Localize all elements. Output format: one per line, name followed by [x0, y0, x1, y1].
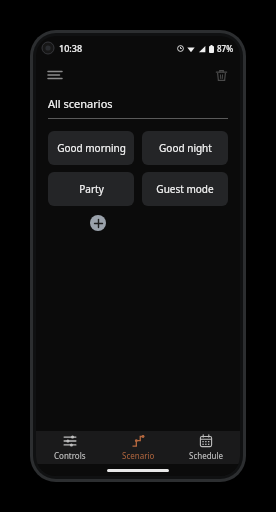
- button[interactable]: Open menu: [42, 62, 68, 88]
- button[interactable]: Good morning: [48, 131, 134, 165]
- button[interactable]: Guest mode: [142, 172, 228, 206]
- staticText: Scenario: [122, 450, 155, 461]
- staticText: Controls: [54, 450, 86, 461]
- staticText: Good morning: [57, 141, 126, 155]
- button[interactable]: Controls: [36, 431, 104, 464]
- staticText: 10:38: [59, 42, 83, 54]
- button[interactable]: Delete: [208, 62, 234, 88]
- staticText: All scenarios: [48, 96, 113, 111]
- button[interactable]: Add scenario: [90, 215, 106, 231]
- staticText: Guest mode: [156, 182, 214, 196]
- staticText: Party: [79, 182, 104, 196]
- button[interactable]: Schedule: [172, 431, 240, 464]
- button[interactable]: All scenarios: [48, 96, 228, 119]
- button[interactable]: Good night: [142, 131, 228, 165]
- button[interactable]: Scenario: [104, 431, 172, 464]
- staticText: Good night: [159, 141, 212, 155]
- staticText: Schedule: [189, 450, 224, 461]
- staticText: 87%: [217, 43, 233, 54]
- button[interactable]: Party: [48, 172, 134, 206]
